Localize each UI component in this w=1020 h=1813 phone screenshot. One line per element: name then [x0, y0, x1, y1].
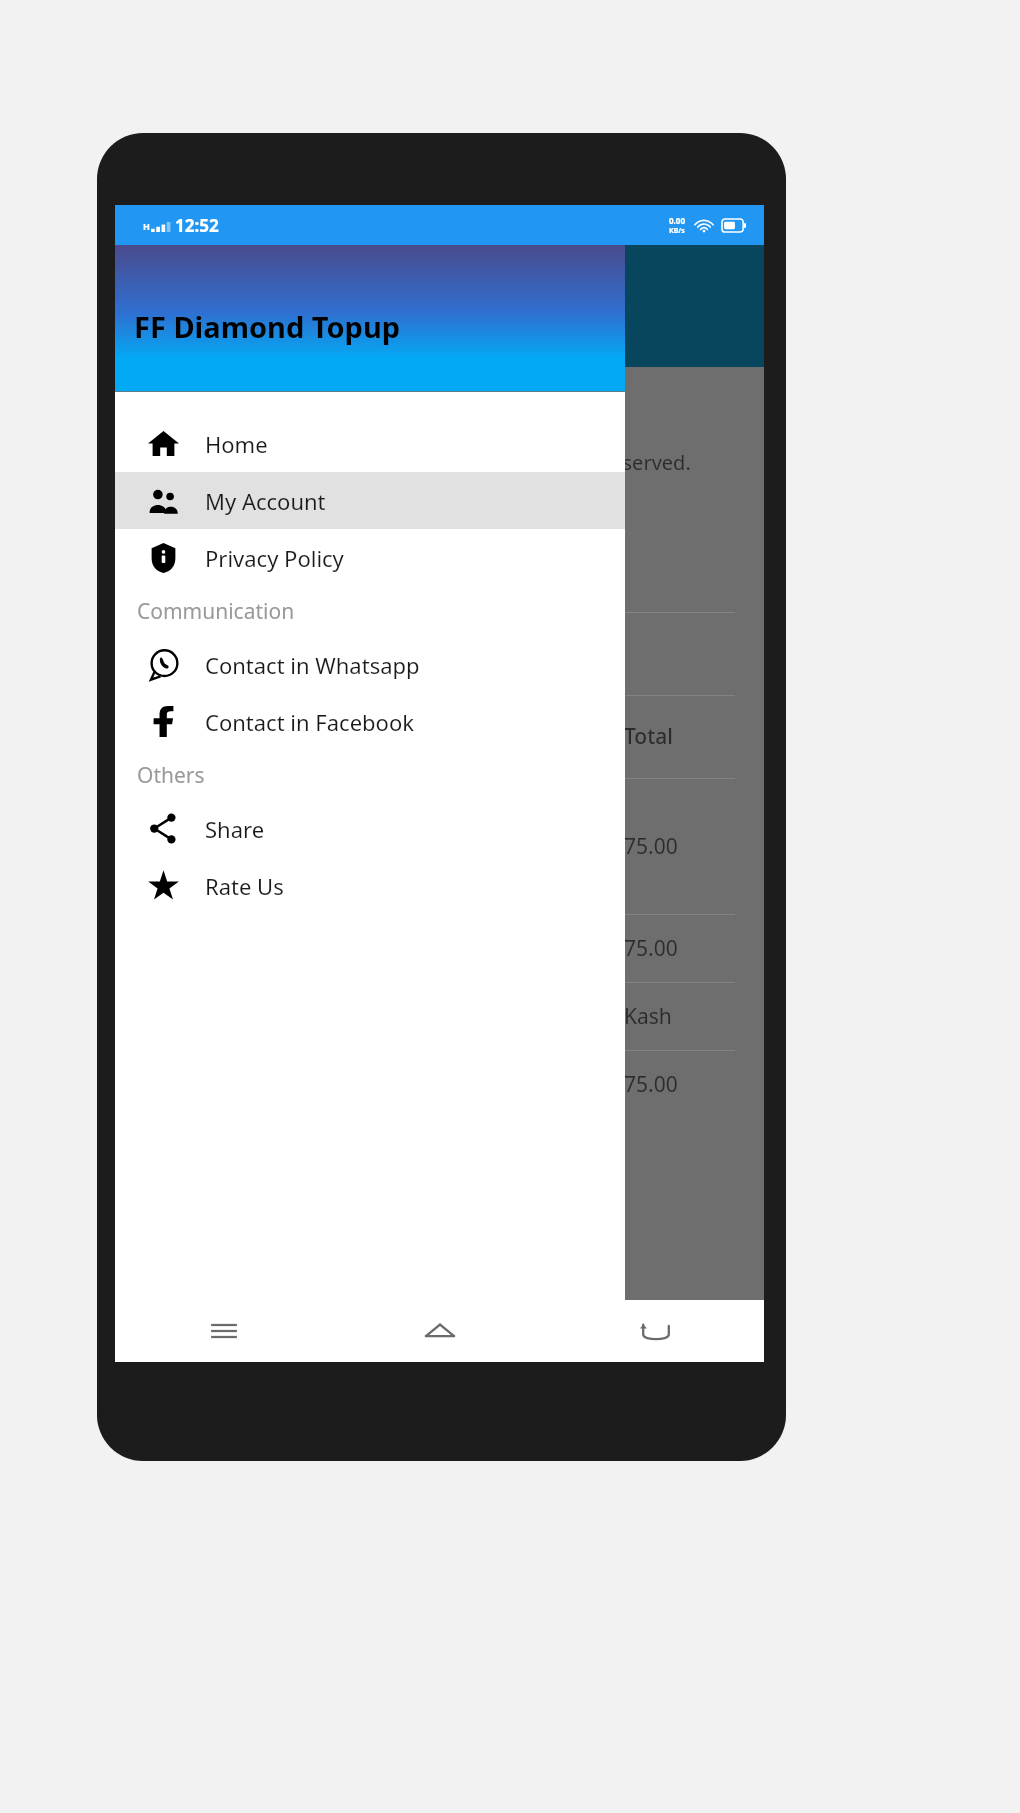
button[interactable]: Home	[115, 415, 625, 472]
staticText: All rights reserved.	[515, 449, 691, 476]
button[interactable]: Back	[548, 1300, 764, 1362]
button[interactable]: Recent apps	[115, 1300, 332, 1362]
button[interactable]: Contact in Facebook	[115, 693, 625, 750]
staticText: 75.00	[624, 1070, 678, 1099]
staticText: Total	[624, 722, 673, 751]
staticText: Home	[205, 429, 268, 459]
button[interactable]: My Account	[115, 472, 625, 529]
staticText: Communication	[137, 597, 295, 626]
staticText: Contact in Facebook	[205, 707, 414, 737]
staticText: Contact in Whatsapp	[205, 650, 420, 680]
staticText: My Account	[205, 486, 326, 516]
staticText: 0.00	[669, 215, 685, 226]
button[interactable]: Contact in Whatsapp	[115, 636, 625, 693]
staticText: Share	[205, 814, 265, 844]
staticText: KB/s	[669, 226, 685, 236]
staticText: 12:52	[175, 214, 219, 237]
button[interactable]: Rate Us	[115, 857, 625, 914]
staticText: Others	[137, 761, 205, 790]
staticText: Rate Us	[205, 871, 284, 901]
staticText: H	[143, 220, 150, 232]
staticText: Privacy Policy	[205, 543, 344, 573]
staticText: FF Diamond Topup	[134, 307, 401, 346]
staticText: 75.00	[624, 832, 678, 861]
button[interactable]: Home	[332, 1300, 548, 1362]
staticText: 75.00	[624, 934, 678, 963]
button[interactable]: Share	[115, 800, 625, 857]
staticText: Kash	[624, 1002, 672, 1031]
button[interactable]: Privacy Policy	[115, 529, 625, 586]
